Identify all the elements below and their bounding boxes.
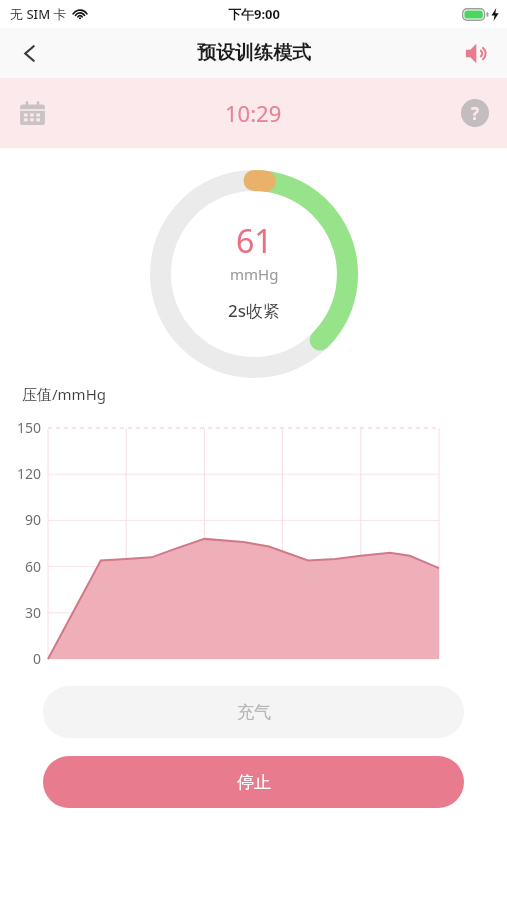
staticText: 2s收紧 [228,299,280,322]
staticText: 无 SIM 卡 [10,5,67,23]
button[interactable]: 充气 [43,686,464,738]
staticText: 60 [25,557,42,576]
button[interactable]: Help [443,78,507,148]
staticText: 预设训练模式 [197,41,311,65]
staticText: 61 [236,219,273,263]
staticText: 30 [25,603,42,622]
button[interactable]: Sound [447,28,507,78]
staticText: ? [471,102,480,125]
staticText: 充气 [237,702,271,723]
staticText: 下午9:00 [228,5,280,23]
button[interactable]: 停止 [43,756,464,808]
staticText: 120 [17,464,42,483]
staticText: 90 [25,510,42,529]
staticText: 10:29 [225,98,282,128]
staticText: 150 [17,418,42,437]
staticText: mmHg [230,264,279,284]
button[interactable]: Calendar [0,78,64,148]
button[interactable]: Back [0,28,58,78]
staticText: 0 [33,649,42,668]
staticText: 压值/mmHg [22,384,106,404]
staticText: 停止 [237,772,271,793]
